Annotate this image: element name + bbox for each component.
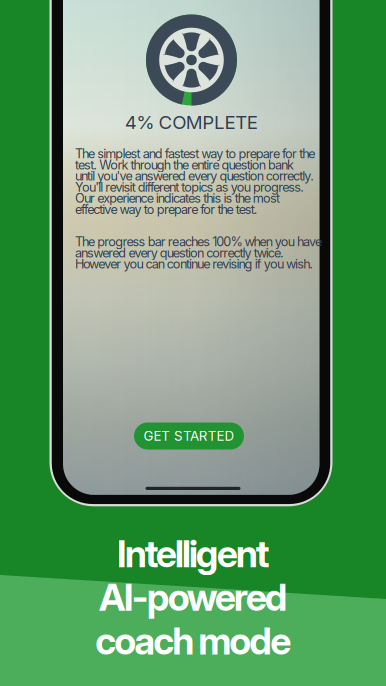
staticText: 4% COMPLETE — [125, 111, 258, 134]
staticText: The progress bar reaches 100% when you h… — [75, 234, 322, 272]
staticText: GET STARTED — [143, 428, 234, 444]
button[interactable]: GET STARTED — [134, 422, 244, 449]
staticText: Intelligent AI-powered coach mode — [95, 531, 291, 663]
staticText: The simplest and fastest way to prepare … — [75, 146, 315, 217]
